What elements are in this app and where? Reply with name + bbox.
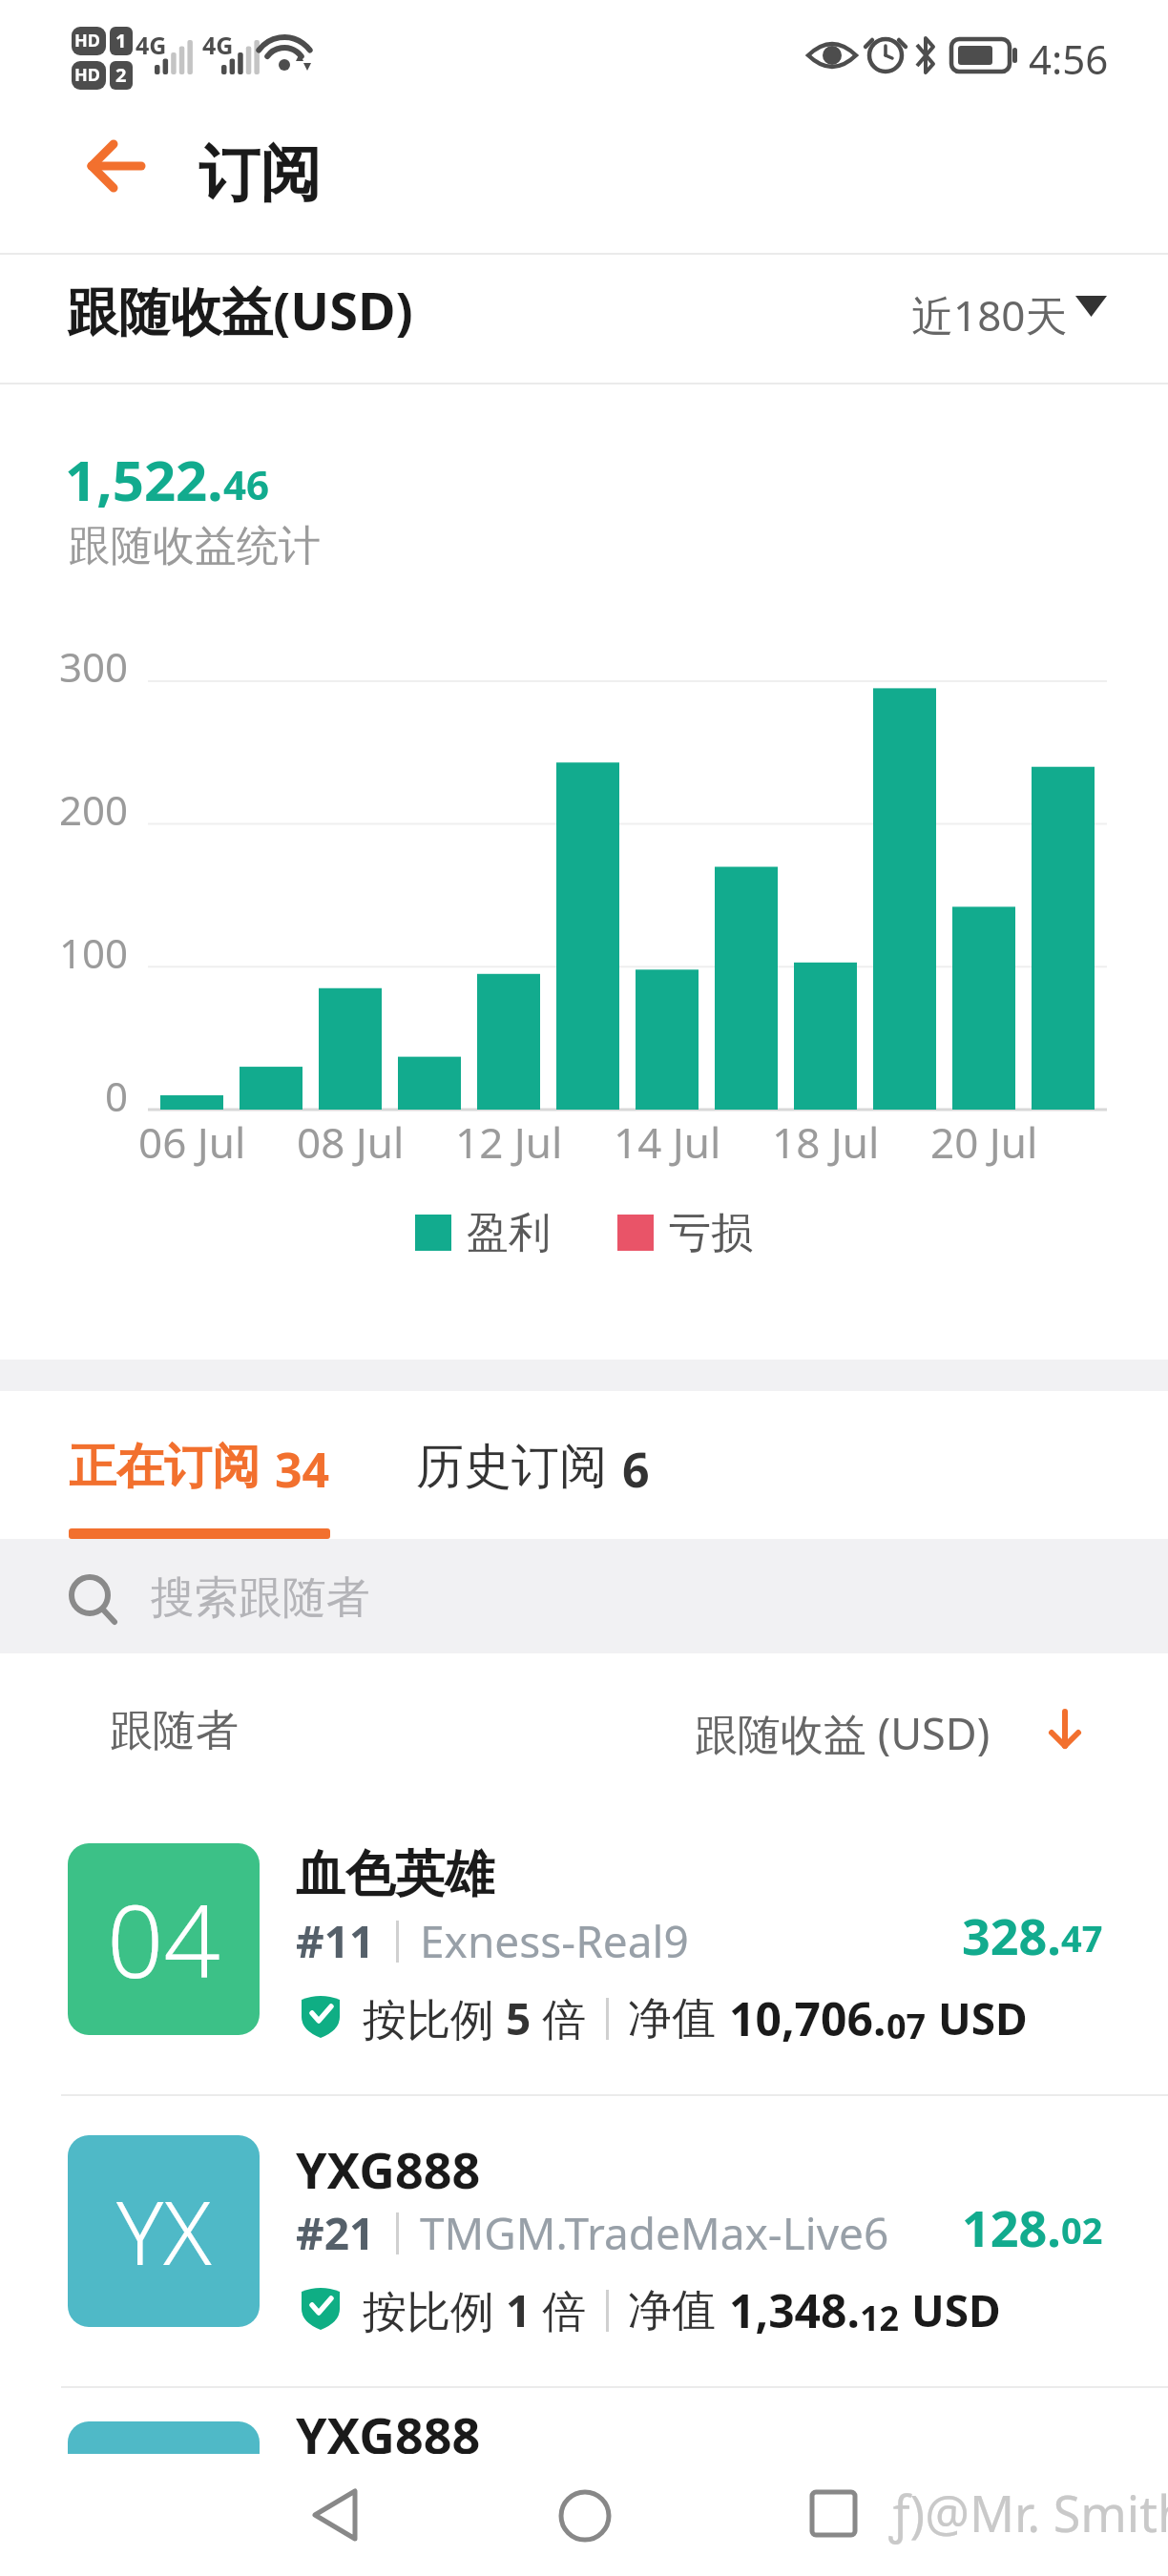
staticText: 搜索跟随者 bbox=[151, 1570, 370, 1626]
staticText: ƒ)@Mr. Smith bbox=[889, 2479, 1168, 2546]
staticText: 34 bbox=[275, 1437, 330, 1502]
staticText: 6 bbox=[622, 1437, 650, 1502]
staticText: 订阅 bbox=[198, 135, 321, 213]
button[interactable] bbox=[310, 2489, 364, 2543]
staticText: 净值 bbox=[628, 2283, 716, 2338]
staticText: #11 bbox=[296, 1911, 375, 1971]
staticText: 300 bbox=[59, 639, 129, 694]
staticText: 12 bbox=[860, 2295, 900, 2341]
staticText: 4:56 bbox=[1029, 31, 1109, 86]
staticText: #21 bbox=[296, 2203, 375, 2263]
staticText: YX bbox=[116, 2171, 212, 2291]
staticText: YXG888 bbox=[296, 2400, 481, 2468]
staticText: 0 bbox=[105, 1069, 129, 1123]
staticText: 按比例 5 倍 bbox=[363, 1988, 587, 2048]
staticText: 46 bbox=[223, 457, 270, 511]
staticText: Exness-Real9 bbox=[420, 1911, 689, 1971]
button[interactable]: 04 bbox=[0, 1841, 1168, 2089]
button[interactable] bbox=[86, 137, 147, 198]
staticText: 近180天 bbox=[911, 286, 1068, 343]
staticText: 净值 bbox=[628, 1991, 716, 2046]
staticText: 跟随收益统计 bbox=[69, 520, 321, 572]
staticText: 200 bbox=[59, 782, 129, 837]
button[interactable] bbox=[1046, 1708, 1084, 1755]
button[interactable] bbox=[558, 2489, 612, 2543]
staticText: 4G bbox=[202, 29, 234, 61]
staticText: 跟随收益(USD) bbox=[67, 275, 413, 345]
staticText: 02 bbox=[1061, 2205, 1103, 2254]
staticText: 4G bbox=[136, 29, 167, 61]
staticText: 按比例 1 倍 bbox=[363, 2280, 587, 2340]
staticText: 328. bbox=[962, 1901, 1061, 1969]
staticText: HD bbox=[74, 63, 100, 87]
staticText: 18 Jul bbox=[772, 1113, 880, 1171]
button[interactable]: 搜索跟随者 bbox=[0, 1539, 1168, 1653]
staticText: 04 bbox=[107, 1872, 220, 2007]
staticText: 正在订阅 bbox=[69, 1437, 260, 1497]
staticText: 1 bbox=[115, 28, 127, 53]
staticText: 20 Jul bbox=[930, 1113, 1038, 1171]
staticText: 100 bbox=[59, 925, 129, 980]
staticText: USD bbox=[938, 1988, 1028, 2048]
staticText: 1,348. bbox=[729, 2279, 860, 2341]
staticText: 128. bbox=[962, 2193, 1061, 2261]
staticText: USD bbox=[911, 2280, 1001, 2340]
staticText: 1,522. bbox=[65, 442, 223, 517]
staticText: 盈利 bbox=[467, 1207, 551, 1259]
staticText: 2 bbox=[115, 62, 127, 88]
staticText: 06 Jul bbox=[138, 1113, 246, 1171]
staticText: 跟随收益 (USD) bbox=[695, 1704, 991, 1762]
staticText: 47 bbox=[1061, 1913, 1103, 1963]
staticText: 14 Jul bbox=[614, 1113, 721, 1171]
staticText: 血色英雄 bbox=[296, 1843, 494, 1906]
staticText: 跟随者 bbox=[110, 1704, 239, 1758]
button[interactable] bbox=[810, 2490, 860, 2540]
staticText: 08 Jul bbox=[297, 1113, 405, 1171]
staticText: 12 Jul bbox=[455, 1113, 563, 1171]
staticText: HD bbox=[74, 29, 100, 52]
button[interactable] bbox=[907, 277, 1116, 353]
staticText: 10,706. bbox=[729, 1987, 886, 2049]
button[interactable]: YX bbox=[0, 2133, 1168, 2381]
staticText: 07 bbox=[886, 2003, 927, 2049]
staticText: TMGM.TradeMax-Live6 bbox=[420, 2203, 889, 2263]
staticText: YXG888 bbox=[296, 2135, 481, 2203]
staticText: 历史订阅 bbox=[416, 1437, 607, 1497]
button[interactable]: 历史订阅 bbox=[416, 1437, 650, 1502]
button[interactable]: 正在订阅 bbox=[69, 1437, 330, 1502]
staticText: 亏损 bbox=[669, 1207, 753, 1259]
